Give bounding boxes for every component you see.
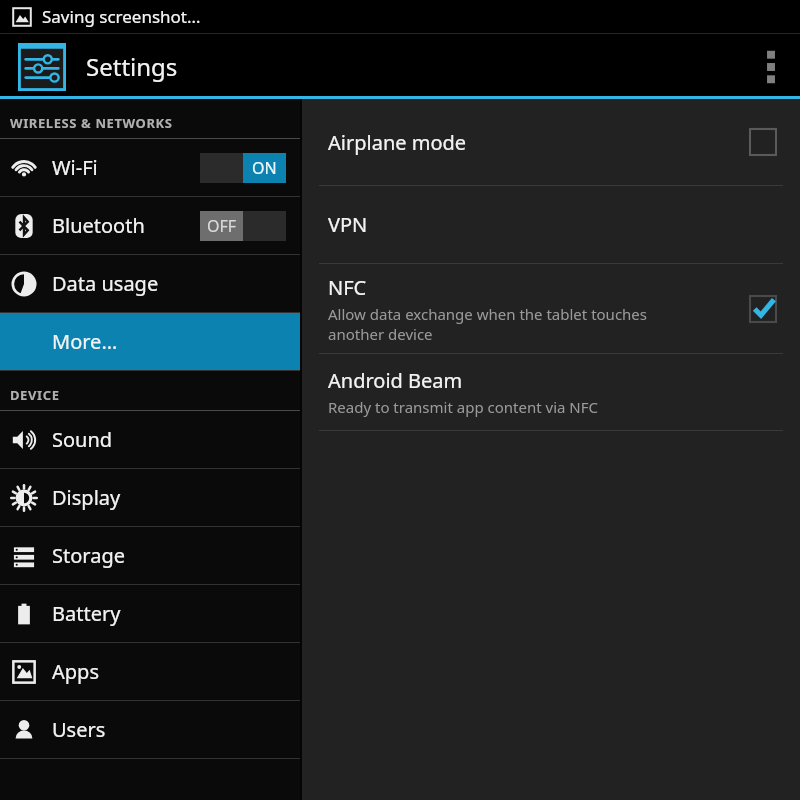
button[interactable]: Apps [0,643,300,700]
staticText: Wi-Fi [52,154,98,181]
staticText: ON [252,157,277,179]
staticText: DEVICE [10,386,60,404]
button[interactable]: Storage [0,527,300,584]
staticText: Bluetooth [52,212,145,239]
staticText: Users [52,716,106,743]
button[interactable]: Battery [0,585,300,642]
button[interactable]: Airplane mode [302,99,800,185]
button[interactable]: NFC [302,264,800,353]
button[interactable]: Users [0,701,300,758]
button[interactable]: Bluetooth [0,197,300,254]
button[interactable]: Wi-Fi [0,139,300,196]
button[interactable]: Settings app icon [18,43,66,91]
staticText: Android Beam [328,367,463,394]
button[interactable]: Data usage [0,255,300,312]
staticText: Settings [86,50,178,83]
staticText: More… [52,328,118,355]
staticText: Sound [52,426,113,453]
staticText: Storage [52,542,125,569]
button[interactable]: On [200,153,286,183]
staticText: Battery [52,600,121,627]
button[interactable]: More options [742,34,800,99]
staticText: OFF [207,215,237,237]
staticText: Ready to transmit app content via NFC [328,397,599,417]
staticText: Saving screenshot… [42,5,201,28]
staticText: Display [52,484,121,511]
button[interactable]: Android Beam [302,354,800,430]
button[interactable]: Unchecked [746,125,780,159]
button[interactable]: VPN [302,186,800,263]
staticText: VPN [328,211,368,238]
staticText: Apps [52,658,99,685]
staticText: NFC [328,274,367,301]
button[interactable]: Display [0,469,300,526]
button[interactable]: Checked [746,292,780,326]
staticText: Allow data exchange when the tablet touc… [328,304,648,344]
staticText: Airplane mode [328,129,467,156]
button[interactable]: Sound [0,411,300,468]
staticText: WIRELESS & NETWORKS [10,114,173,132]
button[interactable]: Off [200,211,286,241]
staticText: Data usage [52,270,159,297]
button[interactable]: More… [0,313,300,370]
